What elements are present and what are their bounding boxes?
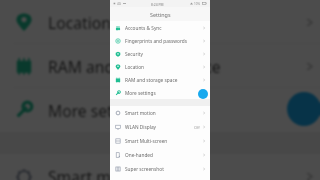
staticText: RAM and storage space (48, 56, 221, 77)
staticText: 4G (117, 2, 122, 6)
button[interactable]: One-handed (110, 148, 210, 162)
staticText: RAM and storage space (125, 77, 178, 83)
staticText: Smart Multi-screen (125, 138, 168, 144)
button[interactable]: Smart Multi-screen (110, 134, 210, 148)
staticText: Security (125, 51, 143, 57)
button[interactable]: Fingerprints and passwords (110, 34, 210, 47)
button[interactable]: Security (110, 47, 210, 60)
staticText: Smart motion (48, 166, 150, 180)
staticText: More settings (48, 100, 150, 121)
staticText: Off (194, 125, 200, 130)
button[interactable]: Smart motion (0, 154, 320, 180)
button[interactable]: RAM and storage space (110, 73, 210, 86)
staticText: Location (125, 64, 145, 70)
staticText: Smart motion (125, 110, 156, 116)
button[interactable]: Location (110, 60, 210, 73)
button[interactable]: RAM and storage space (0, 44, 320, 88)
staticText: Accounts & Sync (125, 25, 162, 31)
staticText: 10% (194, 2, 201, 6)
staticText: Super screenshot (125, 166, 164, 172)
button[interactable]: WLAN Display (110, 120, 210, 134)
button[interactable]: More settings (0, 88, 320, 132)
button[interactable]: Super screenshot (110, 162, 210, 176)
staticText: Location (48, 12, 111, 33)
button[interactable]: Smart motion (110, 106, 210, 120)
staticText: One-handed (125, 152, 153, 158)
button[interactable]: Location (0, 0, 320, 44)
staticText: 8:24 PM (151, 2, 164, 6)
staticText: Fingerprints and passwords (125, 38, 188, 44)
staticText: Settings (150, 11, 171, 18)
button[interactable]: More settings (110, 86, 210, 99)
staticText: WLAN Display (125, 124, 156, 130)
staticText: More settings (125, 90, 156, 96)
button[interactable]: Accounts & Sync (110, 21, 210, 34)
